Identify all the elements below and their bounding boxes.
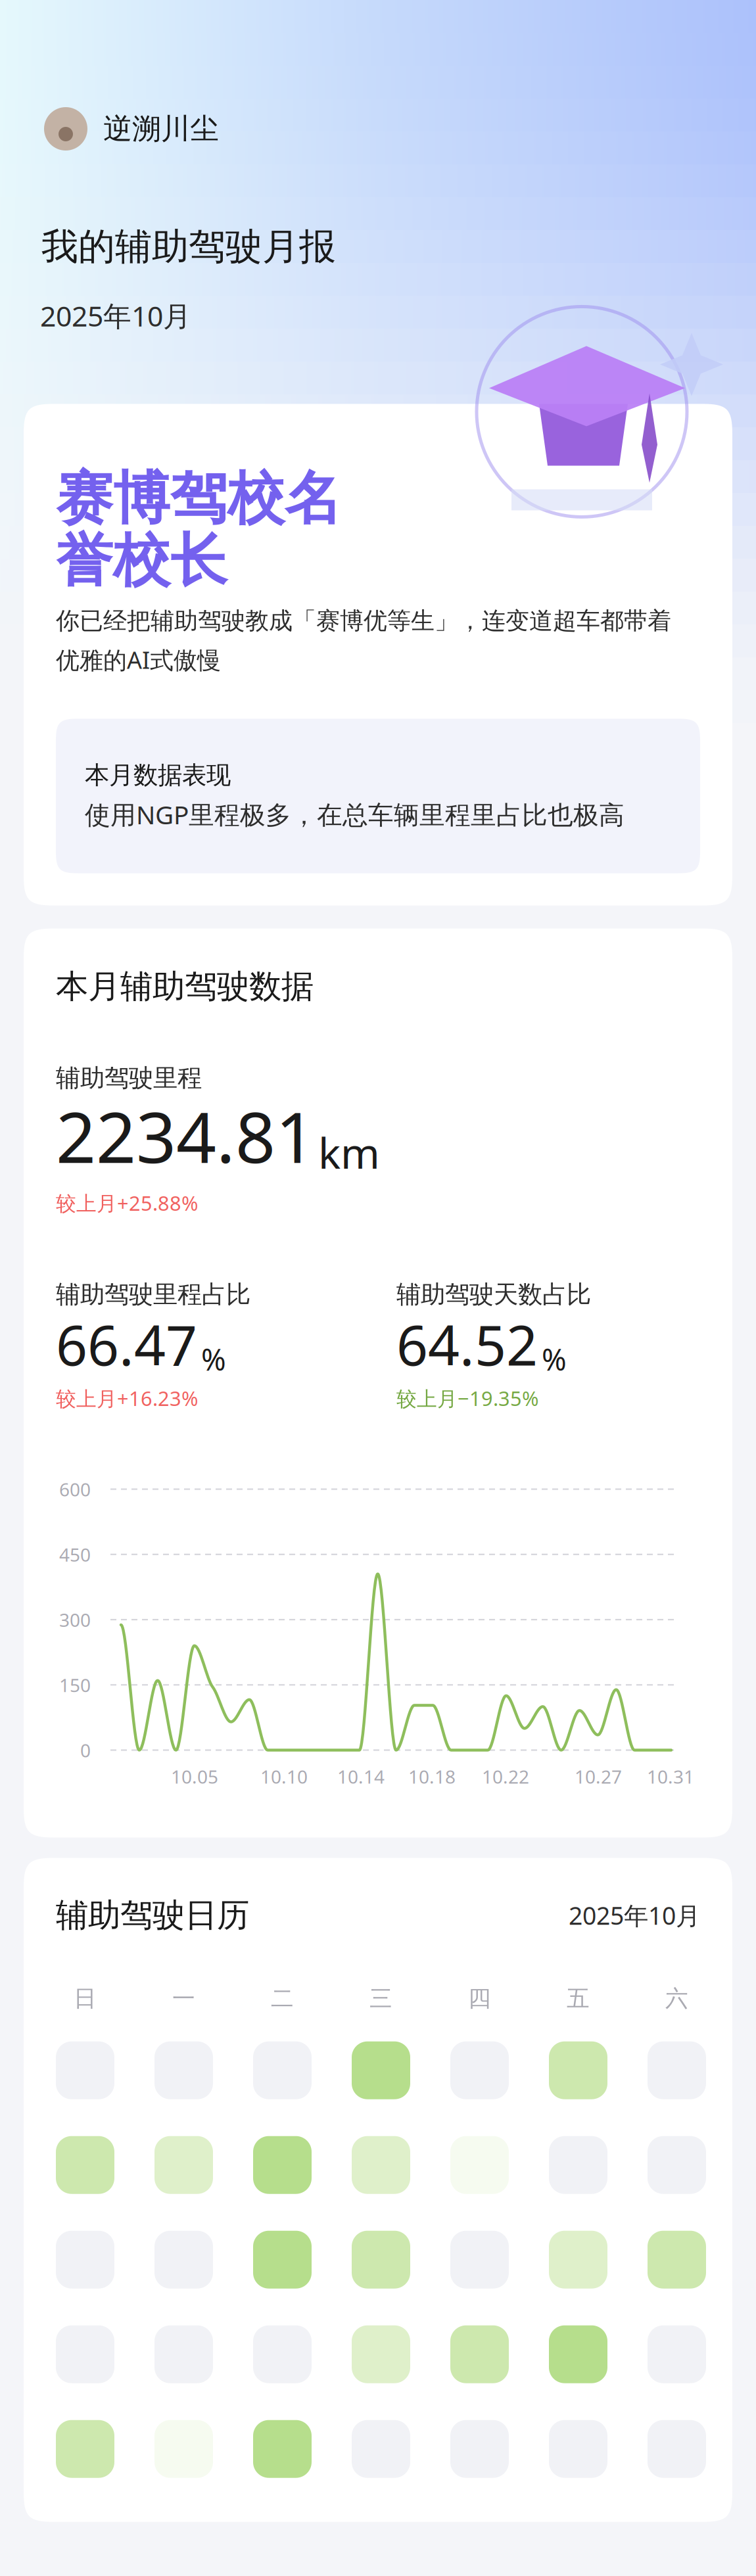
staticText: 0 [80, 1738, 91, 1762]
staticText: 誉校长 [56, 526, 227, 596]
staticText: 较上月+16.23% [56, 1385, 198, 1412]
staticText: 五 [567, 1984, 590, 2012]
staticText: % [201, 1339, 226, 1379]
staticText: 66.47 [56, 1308, 197, 1381]
staticText: 你已经把辅助驾驶教成「赛博优等生」，连变道超车都带着 [56, 606, 671, 635]
staticText: 辅助驾驶里程占比 [56, 1279, 250, 1310]
staticText: 优雅的AI式傲慢 [56, 644, 221, 675]
staticText: 日 [74, 1984, 97, 2012]
staticText: 本月辅助驾驶数据 [56, 967, 314, 1006]
staticText: % [542, 1339, 567, 1379]
staticText: 辅助驾驶日历 [56, 1895, 249, 1935]
staticText: 2234.81 [56, 1089, 316, 1182]
staticText: 较上月+25.88% [56, 1190, 198, 1216]
staticText: 10.27 [575, 1764, 622, 1789]
staticText: 逆溯川尘 [103, 111, 219, 147]
staticText: 辅助驾驶天数占比 [396, 1279, 591, 1310]
staticText: 2025年10月 [40, 297, 191, 334]
staticText: 三 [369, 1984, 392, 2012]
staticText: 本月数据表现 [85, 760, 231, 790]
staticText: 450 [59, 1542, 91, 1567]
staticText: 10.22 [482, 1764, 529, 1789]
staticText: 150 [59, 1673, 91, 1697]
staticText: 四 [468, 1984, 491, 2012]
staticText: 10.05 [171, 1764, 218, 1789]
staticText: 赛博驾校名 [56, 464, 342, 534]
staticText: 64.52 [396, 1308, 538, 1381]
staticText: 10.10 [260, 1764, 308, 1789]
staticText: 二 [271, 1984, 294, 2012]
staticText: 一 [172, 1984, 195, 2012]
staticText: 2025年10月 [569, 1899, 700, 1932]
staticText: 10.14 [337, 1764, 385, 1789]
staticText: 10.31 [647, 1764, 694, 1789]
staticText: 辅助驾驶里程 [56, 1063, 202, 1093]
staticText: 600 [59, 1477, 91, 1501]
staticText: 我的辅助驾驶月报 [41, 224, 336, 269]
staticText: 300 [59, 1607, 91, 1632]
staticText: 使用NGP里程极多，在总车辆里程里占比也极高 [85, 797, 625, 831]
staticText: 较上月−19.35% [396, 1385, 538, 1412]
staticText: 10.18 [408, 1764, 456, 1789]
staticText: 六 [665, 1984, 688, 2012]
button[interactable]: 逆溯川尘 [44, 107, 219, 151]
staticText: km [318, 1124, 380, 1180]
